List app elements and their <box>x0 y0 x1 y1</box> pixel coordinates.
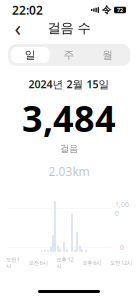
staticText: 2024년 2월 15일 <box>28 77 109 91</box>
staticText: 오전 6시 <box>29 259 48 266</box>
staticText: 0 <box>120 243 124 252</box>
button[interactable]: 주 <box>50 47 88 63</box>
staticText: 22:02 <box>12 2 43 18</box>
staticText: ‹ <box>14 14 21 42</box>
staticText: 오전 1시 <box>6 256 20 269</box>
staticText: 1,000 <box>115 200 129 218</box>
button[interactable]: 일 <box>11 47 50 63</box>
staticText: 오후 12시 <box>56 256 73 269</box>
staticText: 오후 6시 <box>82 259 101 266</box>
staticText: 걸음 <box>60 143 78 154</box>
staticText: 오전 12시 <box>110 259 132 266</box>
staticText: 2.03km <box>48 163 89 179</box>
staticText: 72 <box>117 6 123 14</box>
button[interactable]: 월 <box>88 47 127 63</box>
staticText: 3,484 <box>22 94 116 142</box>
button[interactable]: Back <box>6 18 30 38</box>
staticText: 令 <box>102 4 111 16</box>
staticText: 걸음 수 <box>47 20 90 36</box>
staticText: 일 <box>25 48 36 61</box>
staticText: 주 <box>63 48 74 61</box>
staticText: 월 <box>102 48 113 61</box>
